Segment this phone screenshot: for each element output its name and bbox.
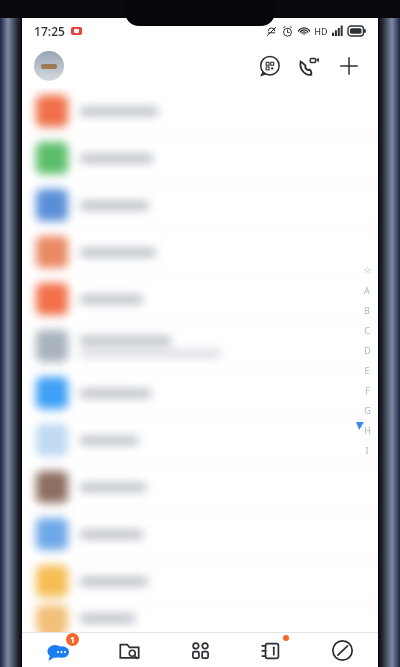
button[interactable] <box>22 323 378 369</box>
button[interactable]: Video call <box>292 49 326 83</box>
staticText: G <box>364 404 371 416</box>
button[interactable] <box>22 464 378 510</box>
button[interactable]: Chats <box>22 633 94 667</box>
button[interactable] <box>22 511 378 557</box>
button[interactable] <box>22 135 378 181</box>
staticText: B <box>364 304 370 316</box>
button[interactable] <box>22 370 378 416</box>
button[interactable]: I <box>360 440 374 460</box>
staticText: I <box>365 444 369 456</box>
button[interactable]: Profile <box>34 51 64 81</box>
button[interactable] <box>22 417 378 463</box>
button[interactable]: E <box>360 360 374 380</box>
staticText: HD <box>314 25 328 37</box>
button[interactable] <box>22 229 378 275</box>
button[interactable]: Moments <box>236 633 307 667</box>
button[interactable]: Add <box>332 49 366 83</box>
staticText: E <box>364 364 370 376</box>
button[interactable]: Scan QR code <box>252 49 286 83</box>
button[interactable]: F <box>360 380 374 400</box>
button[interactable] <box>22 276 378 322</box>
staticText: C <box>364 324 370 336</box>
button[interactable] <box>22 88 378 134</box>
button[interactable] <box>22 605 378 632</box>
button[interactable] <box>22 182 378 228</box>
staticText: A <box>364 284 370 296</box>
button[interactable]: Discover <box>307 633 378 667</box>
staticText: ☆ <box>363 265 372 275</box>
button[interactable]: ☆ <box>360 260 374 280</box>
staticText: 17:25 <box>34 23 65 39</box>
staticText: D <box>364 344 371 356</box>
staticText: 1 <box>70 634 75 645</box>
button[interactable]: C <box>360 320 374 340</box>
button[interactable]: Files <box>94 633 165 667</box>
staticText: F <box>365 384 370 396</box>
button[interactable]: B <box>360 300 374 320</box>
button[interactable]: A <box>360 280 374 300</box>
button[interactable] <box>22 558 378 604</box>
button[interactable]: D <box>360 340 374 360</box>
button[interactable]: Contacts <box>165 633 236 667</box>
button[interactable]: H <box>360 420 374 440</box>
staticText: H <box>364 424 371 436</box>
button[interactable]: G <box>360 400 374 420</box>
